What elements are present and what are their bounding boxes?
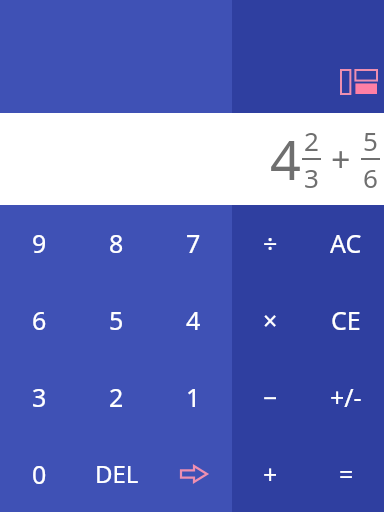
staticText: 7: [186, 226, 201, 260]
button[interactable]: +: [232, 435, 308, 512]
staticText: 2: [109, 380, 124, 414]
button[interactable]: DEL: [78, 435, 155, 512]
button[interactable]: 0: [0, 435, 78, 512]
staticText: 5: [363, 123, 378, 158]
button[interactable]: Next: [155, 435, 232, 512]
staticText: 8: [109, 226, 124, 260]
button[interactable]: 3: [0, 358, 78, 435]
button[interactable]: CE: [308, 281, 384, 358]
staticText: =: [339, 457, 354, 491]
staticText: 4: [270, 122, 301, 196]
button[interactable]: 7: [155, 205, 232, 281]
button[interactable]: ×: [232, 281, 308, 358]
staticText: AC: [330, 226, 362, 260]
button[interactable]: 4: [0, 113, 384, 205]
staticText: 2: [304, 123, 319, 158]
staticText: 3: [304, 160, 319, 195]
button[interactable]: ÷: [232, 205, 308, 281]
staticText: CE: [331, 303, 361, 337]
button[interactable]: 9: [0, 205, 78, 281]
button[interactable]: 4: [155, 281, 232, 358]
staticText: 6: [32, 303, 47, 337]
staticText: +: [331, 136, 351, 182]
button[interactable]: AC: [308, 205, 384, 281]
staticText: +/-: [330, 380, 362, 414]
button[interactable]: Switch layout: [338, 64, 380, 100]
staticText: 6: [363, 160, 378, 195]
button[interactable]: +/-: [308, 358, 384, 435]
staticText: 3: [32, 380, 47, 414]
button[interactable]: =: [308, 435, 384, 512]
staticText: 1: [186, 380, 201, 414]
staticText: 4: [186, 303, 201, 337]
staticText: 5: [109, 303, 124, 337]
button[interactable]: 1: [155, 358, 232, 435]
staticText: 0: [32, 457, 47, 491]
staticText: ×: [263, 303, 278, 337]
staticText: +: [263, 457, 278, 491]
staticText: −: [263, 380, 278, 414]
button[interactable]: 6: [0, 281, 78, 358]
button[interactable]: 5: [78, 281, 155, 358]
staticText: 9: [32, 226, 47, 260]
button[interactable]: −: [232, 358, 308, 435]
staticText: DEL: [95, 457, 139, 490]
staticText: ÷: [263, 226, 278, 260]
button[interactable]: 2: [78, 358, 155, 435]
button[interactable]: 8: [78, 205, 155, 281]
